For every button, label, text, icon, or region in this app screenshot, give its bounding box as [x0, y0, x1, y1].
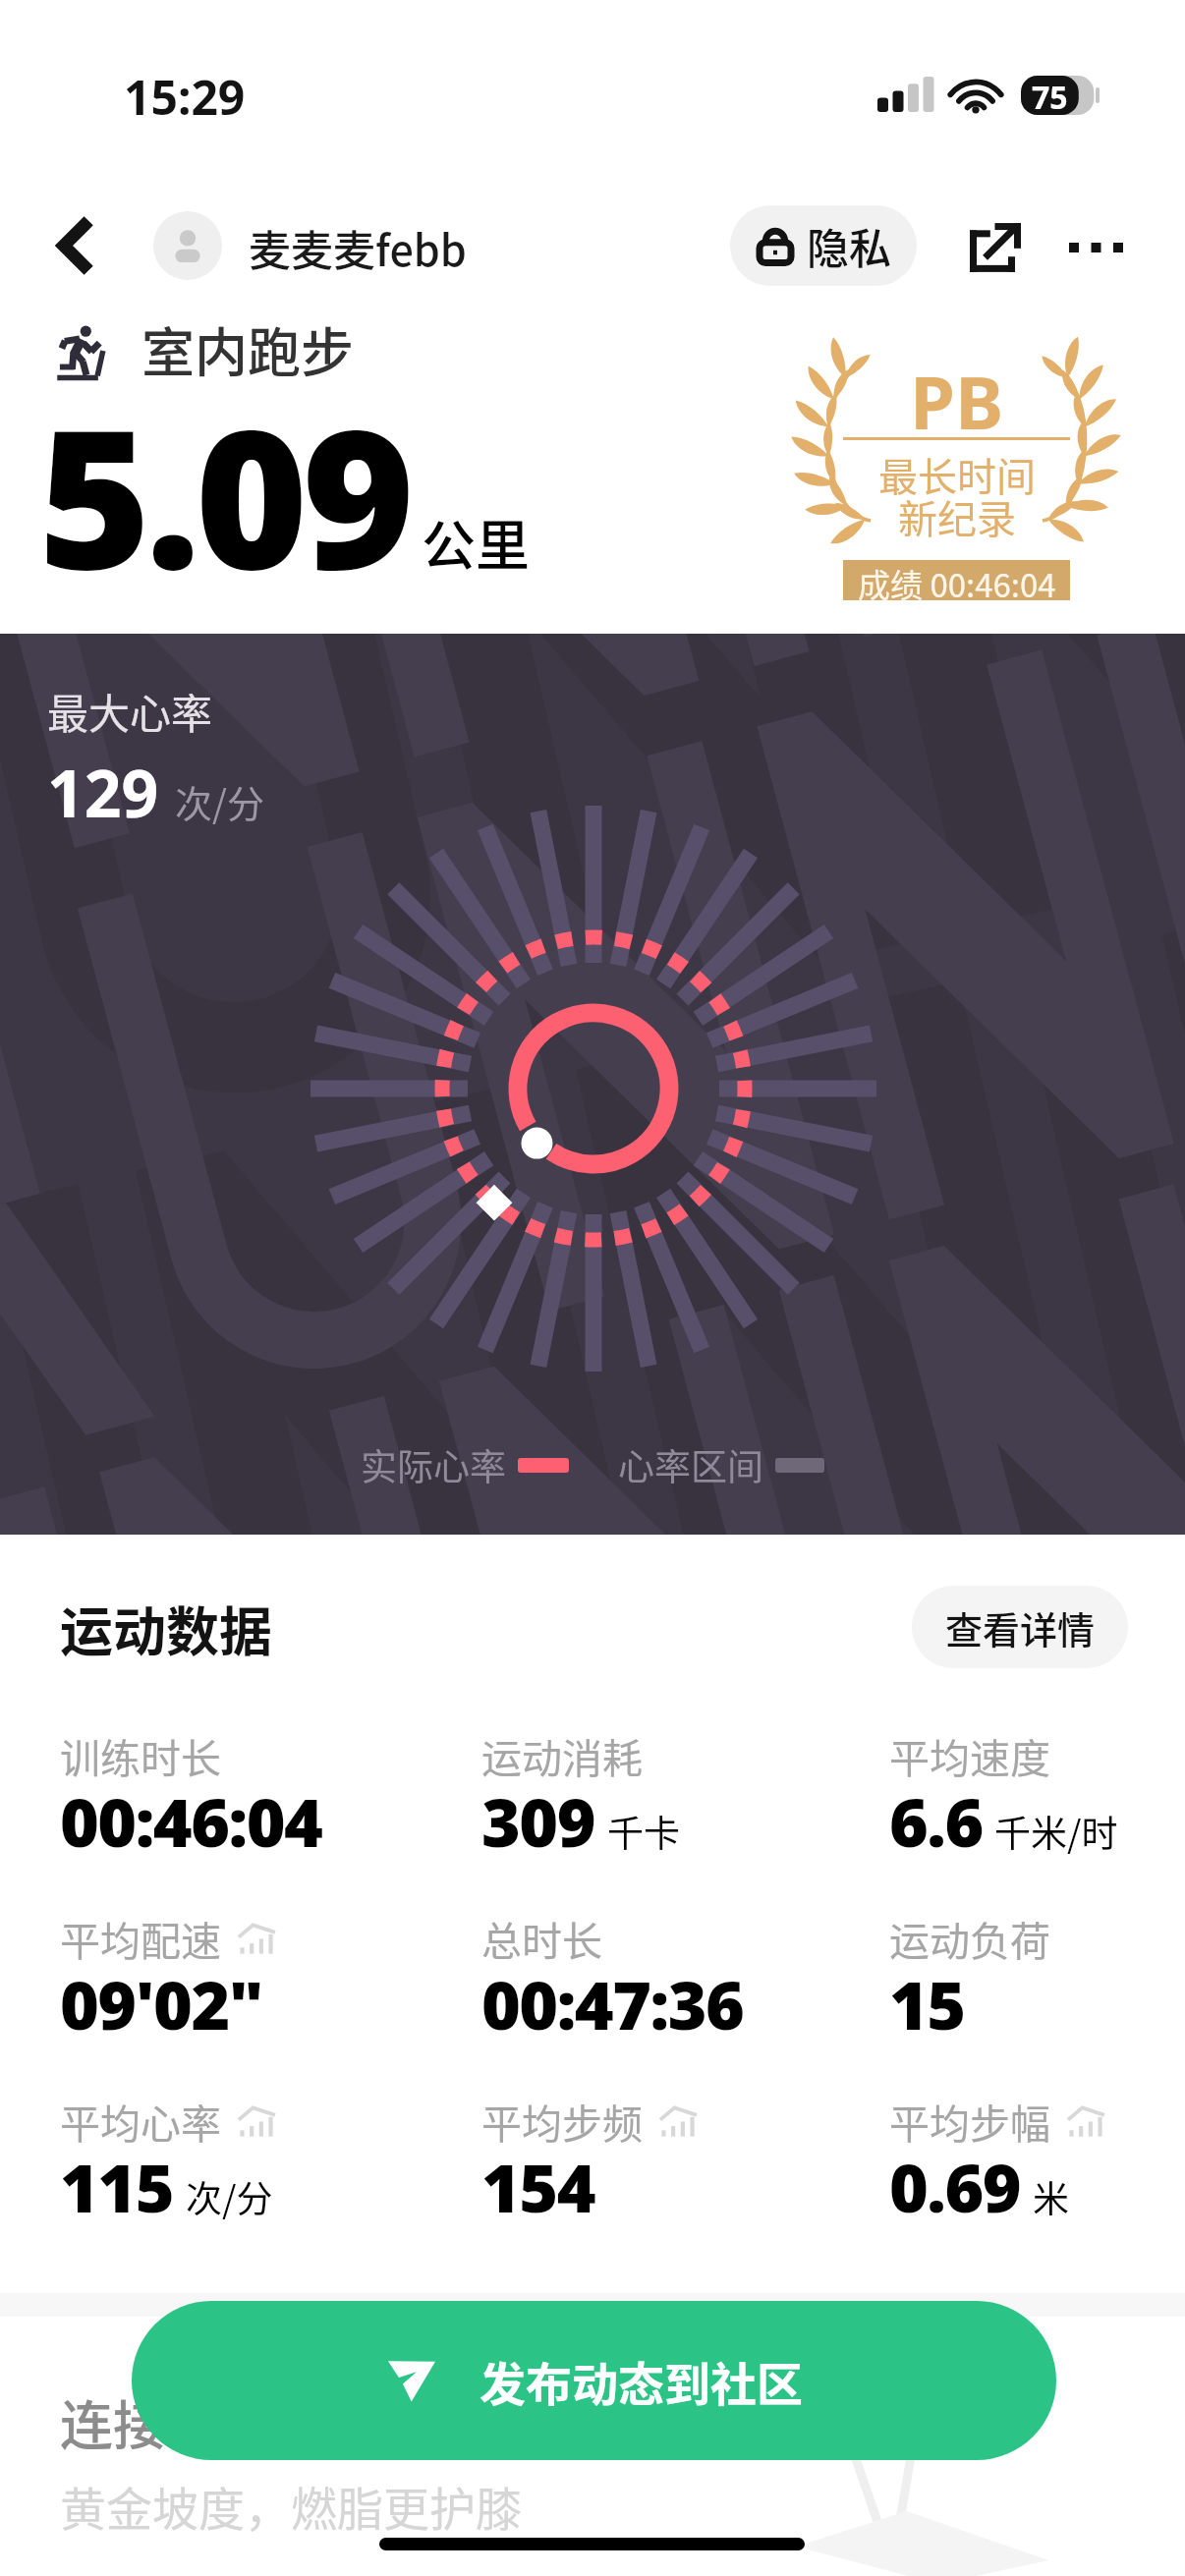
staticText: 0.69 [889, 2141, 1021, 2232]
staticText: 次/分 [186, 2170, 273, 2223]
staticText: 运动消耗 [481, 1726, 643, 1784]
staticText: 公里 [422, 502, 531, 581]
button[interactable]: 隐私 [730, 205, 917, 286]
staticText: 心率区间 [618, 1438, 763, 1491]
staticText: PB [910, 352, 1004, 451]
staticText: 室内跑步 [141, 310, 354, 387]
staticText: 平均心率 [60, 2092, 221, 2150]
staticText: 最大心率 [47, 681, 213, 741]
staticText: 00:47:36 [481, 1958, 744, 2049]
staticText: 发布动态到社区 [480, 2347, 803, 2414]
staticText: 75 [1032, 76, 1068, 115]
staticText: 训练时长 [60, 1726, 221, 1784]
staticText: 129 [47, 748, 159, 836]
staticText: 次/分 [175, 774, 264, 828]
staticText: 5.09 [38, 363, 410, 625]
staticText: 麦麦麦febb [249, 217, 467, 278]
staticText: 运动负荷 [889, 1909, 1050, 1967]
staticText: 154 [481, 2141, 595, 2232]
staticText: 成绩 00:46:04 [858, 560, 1056, 600]
button[interactable]: 查看详情 [912, 1586, 1128, 1668]
staticText: 09'02" [60, 1958, 262, 2049]
button[interactable]: Back [30, 202, 117, 289]
staticText: 千卡 [607, 1805, 680, 1858]
staticText: 查看详情 [945, 1600, 1096, 1654]
staticText: 运动数据 [60, 1590, 272, 1666]
staticText: 309 [481, 1775, 595, 1867]
staticText: 连接 [60, 2383, 166, 2460]
staticText: 115 [60, 2141, 174, 2232]
staticText: 隐私 [807, 215, 891, 276]
button[interactable]: More options [1042, 202, 1150, 293]
staticText: 最长时间 [878, 446, 1036, 503]
button[interactable]: 发布动态到社区 [132, 2301, 1056, 2460]
staticText: 黄金坡度，燃脂更护膝 [60, 2472, 522, 2539]
staticText: 实际心率 [361, 1438, 506, 1491]
staticText: 15 [889, 1958, 965, 2049]
staticText: 米 [1033, 2170, 1069, 2223]
button[interactable]: Share [958, 208, 1033, 283]
staticText: 平均速度 [889, 1726, 1050, 1784]
staticText: 15:29 [124, 65, 246, 129]
staticText: 平均配速 [60, 1909, 221, 1967]
staticText: 00:46:04 [60, 1775, 322, 1867]
staticText: 千米/时 [994, 1805, 1118, 1858]
staticText: 平均步幅 [889, 2092, 1050, 2150]
staticText: 6.6 [889, 1775, 983, 1867]
button[interactable]: 麦麦麦febb [153, 204, 467, 287]
staticText: 新纪录 [898, 488, 1016, 545]
staticText: 总时长 [481, 1909, 602, 1967]
staticText: 平均步频 [481, 2092, 643, 2150]
